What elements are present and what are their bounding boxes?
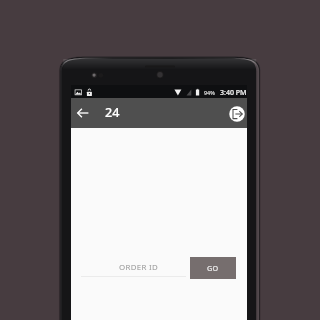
button[interactable]: Back bbox=[71, 101, 95, 125]
button[interactable]: GO bbox=[190, 257, 236, 279]
staticText: 3:40 PM bbox=[220, 88, 247, 98]
button[interactable]: ORDER ID bbox=[81, 262, 186, 277]
button[interactable]: Logout bbox=[225, 102, 249, 126]
staticText: GO bbox=[207, 263, 219, 273]
staticText: 94% bbox=[204, 89, 215, 96]
staticText: 24 bbox=[105, 104, 120, 121]
staticText: ORDER ID bbox=[86, 262, 191, 273]
